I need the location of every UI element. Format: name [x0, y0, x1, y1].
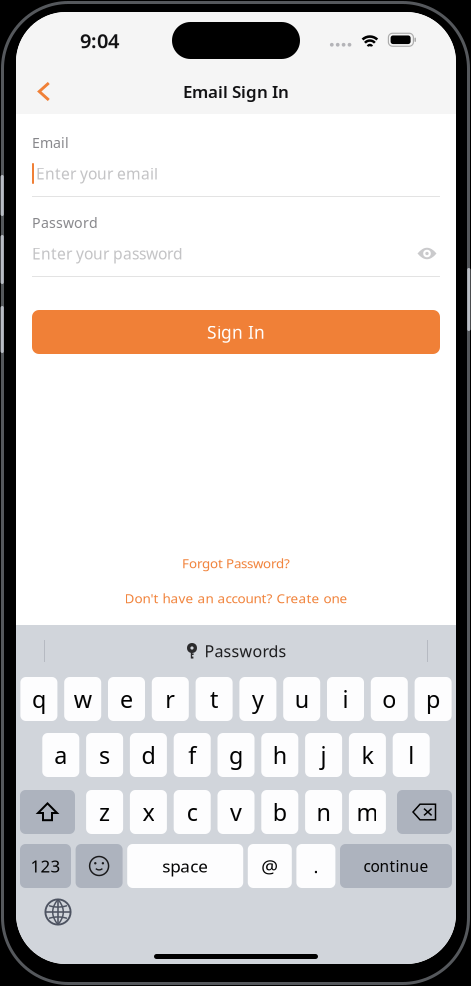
button[interactable]: j [305, 733, 342, 777]
staticText: l [408, 739, 414, 771]
button[interactable]: o [371, 677, 408, 721]
staticText: p [426, 683, 440, 715]
staticText: v [230, 796, 242, 828]
staticText: c [187, 796, 198, 828]
staticText: g [229, 739, 243, 771]
button[interactable]: p [415, 677, 452, 721]
staticText: Forgot Password? [182, 554, 290, 572]
button[interactable]: Passwords [185, 634, 286, 668]
staticText: t [210, 683, 218, 715]
button[interactable]: Sign In [32, 310, 440, 354]
staticText: Email [32, 133, 69, 152]
staticText: o [382, 683, 396, 715]
staticText: j [321, 739, 327, 771]
button[interactable]: d [130, 733, 167, 777]
staticText: 9:04 [80, 27, 119, 54]
button[interactable]: Shift [20, 790, 75, 834]
staticText: k [361, 739, 373, 771]
staticText: h [273, 739, 287, 771]
staticText: n [317, 796, 331, 828]
button[interactable]: m [349, 790, 386, 834]
staticText: Don't have an account? Create one [124, 589, 347, 607]
button[interactable]: Forgot Password? [16, 552, 456, 574]
staticText: i [342, 683, 348, 715]
button[interactable]: t [196, 677, 233, 721]
staticText: a [54, 739, 67, 771]
staticText: space [162, 854, 208, 878]
button[interactable]: 123 [20, 844, 71, 888]
button[interactable]: q [20, 677, 57, 721]
button[interactable]: l [393, 733, 430, 777]
staticText: m [356, 796, 378, 828]
button[interactable]: space [127, 844, 243, 888]
button[interactable]: Show password [414, 241, 440, 265]
button[interactable]: k [349, 733, 386, 777]
staticText: f [188, 739, 196, 771]
staticText: r [165, 683, 175, 715]
staticText: Passwords [204, 640, 286, 662]
staticText: @ [261, 853, 278, 879]
button[interactable]: Back [26, 73, 62, 109]
staticText: s [99, 739, 110, 771]
staticText: Enter your password [32, 243, 183, 264]
staticText: q [32, 683, 46, 715]
button[interactable]: h [261, 733, 298, 777]
button[interactable]: i [327, 677, 364, 721]
button[interactable]: y [239, 677, 276, 721]
button[interactable]: a [42, 733, 79, 777]
button[interactable]: z [86, 790, 123, 834]
button[interactable]: c [174, 790, 211, 834]
button[interactable]: b [261, 790, 298, 834]
button[interactable]: Delete [397, 790, 452, 834]
staticText: . [313, 853, 318, 879]
button[interactable]: @ [248, 844, 292, 888]
button[interactable]: n [305, 790, 342, 834]
button[interactable]: r [152, 677, 189, 721]
staticText: z [99, 796, 110, 828]
staticText: Email Sign In [183, 80, 289, 103]
staticText: d [141, 739, 155, 771]
staticText: continue [363, 855, 428, 877]
staticText: x [142, 796, 154, 828]
button[interactable]: f [174, 733, 211, 777]
button[interactable]: e [108, 677, 145, 721]
button[interactable]: s [86, 733, 123, 777]
staticText: Enter your email [36, 163, 158, 184]
staticText: 123 [30, 854, 60, 878]
staticText: Sign In [207, 320, 265, 344]
button[interactable]: Don't have an account? Create one [16, 587, 456, 609]
staticText: u [295, 683, 309, 715]
button[interactable]: x [130, 790, 167, 834]
staticText: Password [32, 213, 98, 232]
button[interactable]: . [296, 844, 335, 888]
button[interactable]: Next keyboard [40, 894, 76, 930]
button[interactable]: Emoji [76, 844, 123, 888]
button[interactable]: w [64, 677, 101, 721]
button[interactable]: v [217, 790, 254, 834]
staticText: w [74, 683, 92, 715]
button[interactable]: continue [340, 844, 452, 888]
staticText: b [273, 796, 287, 828]
button[interactable]: g [217, 733, 254, 777]
staticText: y [252, 683, 264, 715]
button[interactable]: u [283, 677, 320, 721]
staticText: e [120, 683, 133, 715]
